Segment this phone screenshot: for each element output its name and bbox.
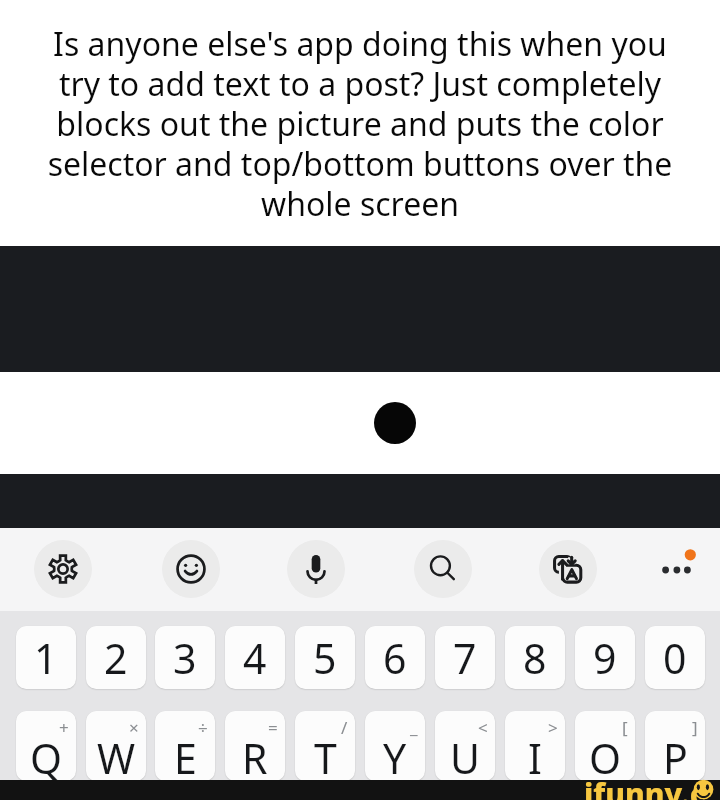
button[interactable]: Search (414, 540, 472, 598)
staticText: 5 (313, 630, 337, 686)
staticText: [ (622, 716, 628, 739)
button[interactable]: I (505, 711, 565, 781)
staticText: _ (410, 716, 418, 739)
button[interactable]: T (295, 711, 355, 781)
button[interactable]: 0 (645, 626, 705, 689)
staticText: 4 (243, 630, 267, 686)
button[interactable]: R (225, 711, 285, 781)
button[interactable]: 2 (86, 626, 146, 689)
staticText: 2 (104, 630, 128, 686)
button[interactable]: 3 (155, 626, 215, 689)
button[interactable]: U (435, 711, 495, 781)
staticText: > (548, 716, 558, 739)
button[interactable]: W (86, 711, 146, 781)
button[interactable]: Emoji (162, 540, 220, 598)
staticText: 6 (383, 630, 407, 686)
button[interactable]: Y (365, 711, 425, 781)
button[interactable]: Color selector (374, 402, 416, 444)
staticText: O (589, 730, 622, 781)
staticText: 3 (173, 630, 197, 686)
button[interactable]: 9 (575, 626, 635, 689)
staticText: E (174, 730, 197, 781)
staticText: Q (30, 730, 63, 781)
staticText: 0 (663, 630, 687, 686)
staticText: W (97, 730, 136, 781)
staticText: 7 (453, 630, 477, 686)
button[interactable]: O (575, 711, 635, 781)
button[interactable]: 5 (295, 626, 355, 689)
staticText: I (528, 730, 542, 781)
staticText: T (314, 730, 337, 781)
staticText: × (129, 716, 139, 739)
button[interactable]: 4 (225, 626, 285, 689)
button[interactable]: Settings (34, 540, 92, 598)
staticText: / (341, 716, 348, 739)
button[interactable]: E (155, 711, 215, 781)
button[interactable]: Translate (539, 540, 597, 598)
staticText: ifunny.c (584, 773, 706, 800)
staticText: U (450, 730, 480, 781)
button[interactable]: Q (16, 711, 76, 781)
staticText: = (268, 716, 278, 739)
staticText: 9 (593, 630, 617, 686)
button[interactable]: Voice input (287, 540, 345, 598)
button[interactable]: P (645, 711, 705, 781)
staticText: Y (383, 730, 407, 781)
staticText: Is anyone else's app doing this when you… (0, 22, 720, 226)
staticText: ÷ (198, 716, 208, 739)
staticText: ] (692, 716, 698, 739)
staticText: < (478, 716, 488, 739)
staticText: 8 (523, 630, 547, 686)
button[interactable]: More options (652, 541, 704, 593)
button[interactable]: 6 (365, 626, 425, 689)
button[interactable]: 1 (16, 626, 76, 689)
staticText: 1 (34, 630, 58, 686)
button[interactable]: 7 (435, 626, 495, 689)
staticText: + (59, 716, 69, 739)
staticText: P (663, 730, 688, 781)
button[interactable]: 8 (505, 626, 565, 689)
staticText: R (242, 730, 268, 781)
